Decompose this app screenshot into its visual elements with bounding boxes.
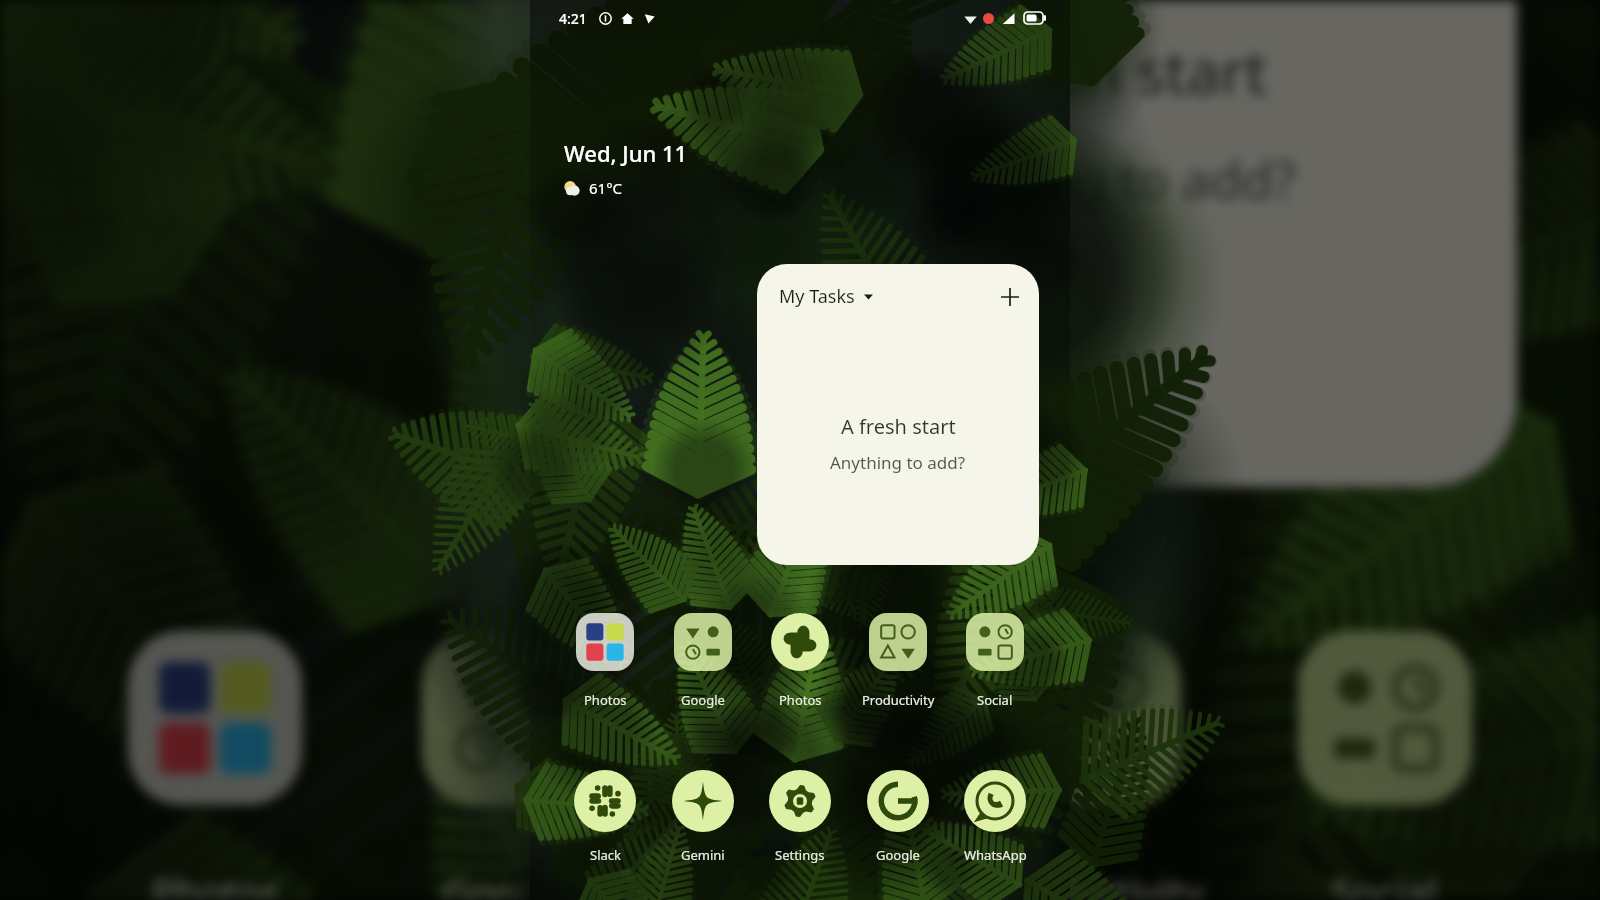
button[interactable]: Google [863,770,933,864]
staticText: Anything to add? [890,145,1298,214]
staticText: A fresh start [923,31,1268,112]
button[interactable]: Settings [765,770,835,864]
staticText: 4:21 [559,9,587,28]
button[interactable]: Photos [571,613,639,709]
staticText: Gemini [681,846,725,864]
button[interactable]: Google [669,613,737,709]
button[interactable]: Photos [113,631,317,900]
staticText: Google [443,865,575,900]
button[interactable]: Social [961,613,1029,709]
staticText: Social [977,691,1013,709]
staticText: Photos [152,865,281,900]
staticText: Settings [775,846,825,864]
staticText: Google [681,691,725,709]
staticText: My Tasks [779,284,855,309]
button[interactable]: Productivity [864,613,932,709]
staticText: Slack [590,846,621,864]
button[interactable]: Google [407,631,611,900]
staticText: 61°C [589,178,623,198]
button[interactable]: WhatsApp [960,770,1030,864]
button[interactable]: Photos [766,613,834,709]
staticText: Social [1331,865,1439,900]
button[interactable]: Social [1283,631,1487,900]
staticText: Anything to add? [830,451,966,474]
button[interactable]: Productivity [992,631,1196,900]
staticText: Wed, Jun 11 [564,138,688,168]
button[interactable]: Gemini [668,770,738,864]
staticText: Google [876,846,920,864]
staticText: A fresh start [841,413,956,440]
button[interactable]: Photos [698,631,902,900]
staticText: Productivity [862,691,935,709]
staticText: Photos [737,865,866,900]
staticText: Productivity [986,865,1205,900]
button[interactable]: My Tasks [757,264,1039,565]
staticText: Photos [584,691,627,709]
button[interactable]: Add task [999,286,1021,308]
staticText: Photos [779,691,822,709]
staticText: WhatsApp [964,846,1027,864]
button[interactable]: My Tasks [671,0,1517,487]
button[interactable]: Slack [570,770,640,864]
